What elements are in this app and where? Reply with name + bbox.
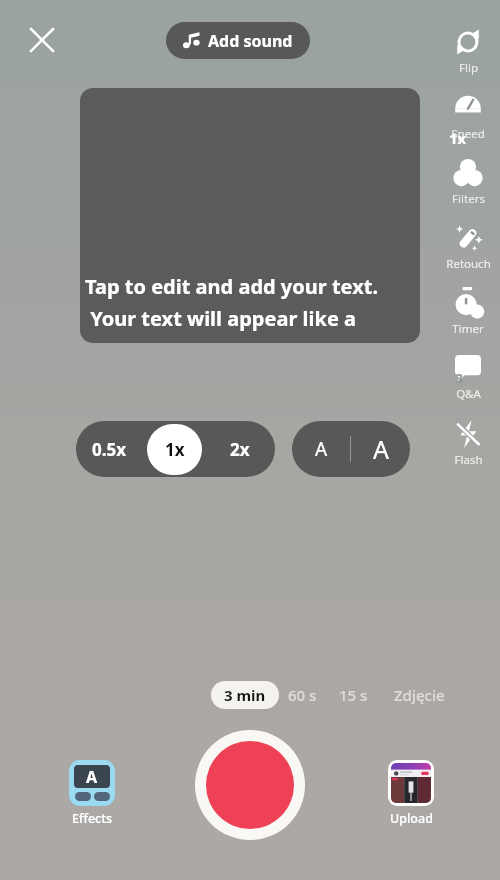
staticText: 2x xyxy=(230,438,250,461)
staticText: A xyxy=(315,436,328,462)
button[interactable]: Retouch xyxy=(437,220,499,272)
staticText: Your text will appear like a xyxy=(85,305,357,332)
staticText: 15 s xyxy=(339,685,368,705)
staticText: 1x xyxy=(449,128,467,148)
button[interactable]: Speed xyxy=(437,90,499,142)
button[interactable]: Zdjęcie xyxy=(381,680,458,710)
staticText: Speed xyxy=(451,126,485,142)
button[interactable]: Record xyxy=(195,730,305,840)
staticText: Q&A xyxy=(456,386,481,402)
staticText: Add sound xyxy=(208,30,293,52)
button[interactable]: Flip xyxy=(437,24,499,76)
button[interactable]: Upload xyxy=(383,760,439,827)
button[interactable]: Tap to edit and add your text. xyxy=(80,88,420,343)
button[interactable]: 60 s xyxy=(279,680,326,710)
button[interactable]: Filters xyxy=(437,155,499,207)
button[interactable]: 2x xyxy=(205,421,275,477)
staticText: 3 xyxy=(456,370,463,384)
button[interactable]: 0.5x xyxy=(76,421,143,477)
staticText: A xyxy=(86,766,98,788)
button[interactable]: 1x xyxy=(143,421,205,477)
button[interactable]: Small font xyxy=(292,421,350,477)
staticText: Filters xyxy=(452,191,485,207)
staticText: A xyxy=(373,432,389,466)
staticText: 3 min xyxy=(224,685,266,705)
staticText: Timer xyxy=(452,321,484,337)
button[interactable]: Q&A xyxy=(437,350,499,402)
staticText: Tap to edit and add your text. xyxy=(85,273,378,300)
button[interactable]: Large font xyxy=(351,421,410,477)
button[interactable]: A xyxy=(65,760,119,827)
button[interactable]: Add sound xyxy=(166,22,310,59)
staticText: Effects xyxy=(72,810,113,827)
staticText: Flip xyxy=(459,60,478,76)
button[interactable]: Timer xyxy=(437,285,499,337)
staticText: 1x xyxy=(165,438,185,461)
button[interactable]: Close xyxy=(24,22,60,58)
button[interactable]: Flash xyxy=(437,416,499,468)
staticText: 0.5x xyxy=(92,438,127,461)
staticText: Upload xyxy=(390,810,433,827)
staticText: Retouch xyxy=(446,256,491,272)
staticText: 60 s xyxy=(288,685,317,705)
staticText: Zdjęcie xyxy=(394,685,445,705)
button[interactable]: 15 s xyxy=(326,680,381,710)
staticText: Flash xyxy=(454,452,483,468)
button[interactable]: 3 min xyxy=(211,681,279,709)
